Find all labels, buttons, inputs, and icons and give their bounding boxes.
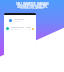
button[interactable]: Contact avatar: [4, 18, 36, 23]
other: Deal avatar: [6, 27, 9, 30]
button[interactable]: Deal avatar: [4, 26, 36, 31]
staticText: one platform for your team: [20, 7, 44, 9]
staticText: SELL SMARTER, MANAGE DELIVER TOP QUALITY…: [16, 2, 49, 9]
other: Contact avatar: [9, 19, 12, 22]
